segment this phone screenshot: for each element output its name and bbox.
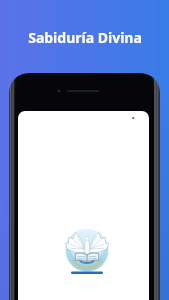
button[interactable]: Sabiduría Divina — [28, 28, 142, 47]
other: App preview — [9, 73, 160, 300]
